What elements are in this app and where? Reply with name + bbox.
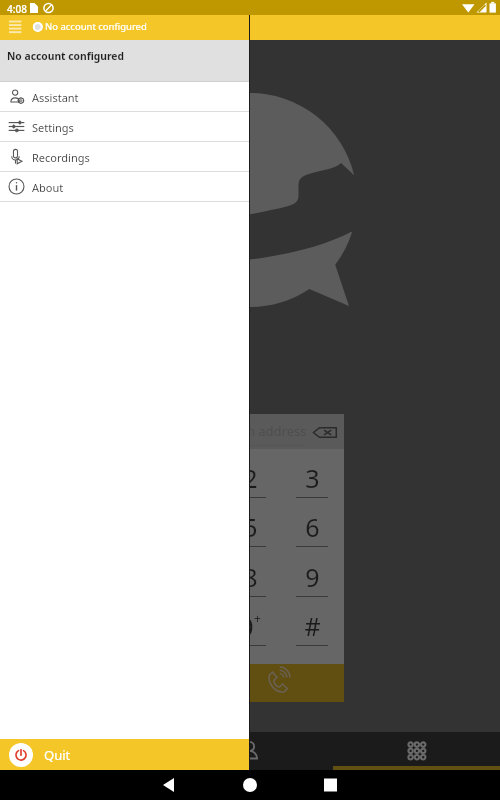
- staticText: Quit: [44, 746, 71, 764]
- button[interactable]: #: [282, 611, 342, 660]
- button[interactable]: 2: [220, 463, 280, 512]
- button[interactable]: 8: [220, 562, 280, 611]
- staticText: 6: [305, 510, 320, 544]
- button[interactable]: Settings: [0, 112, 250, 141]
- button[interactable]: Dialer: [333, 732, 500, 770]
- button[interactable]: Recordings: [0, 142, 250, 171]
- staticText: Enter a number or an address: [124, 422, 307, 440]
- button[interactable]: History: [0, 732, 166, 770]
- button[interactable]: Contacts: [166, 732, 333, 770]
- staticText: Recordings: [32, 150, 90, 165]
- staticText: Settings: [32, 120, 74, 135]
- staticText: No account configured: [7, 49, 124, 63]
- button[interactable]: Open navigation menu: [3, 16, 28, 38]
- staticText: 8: [243, 560, 258, 594]
- staticText: No account configured: [45, 20, 147, 33]
- staticText: +: [254, 610, 261, 626]
- button[interactable]: No account configured: [0, 40, 250, 82]
- button[interactable]: 3: [282, 463, 342, 512]
- staticText: 2: [243, 461, 258, 495]
- button[interactable]: 0: [220, 611, 280, 660]
- button[interactable]: 6: [282, 512, 342, 561]
- button[interactable]: About: [0, 172, 250, 201]
- staticText: 9: [305, 560, 320, 594]
- staticText: About: [32, 180, 64, 195]
- button[interactable]: Quit: [0, 739, 250, 770]
- staticText: 5: [243, 510, 258, 544]
- staticText: 3: [305, 461, 320, 495]
- button[interactable]: Assistant: [0, 82, 250, 111]
- button[interactable]: Call: [154, 664, 344, 702]
- button[interactable]: 5: [220, 512, 280, 561]
- staticText: 4:08: [7, 2, 27, 16]
- staticText: Assistant: [32, 90, 79, 105]
- staticText: 0: [239, 609, 254, 643]
- button[interactable]: 9: [282, 562, 342, 611]
- button[interactable]: Erase: [313, 426, 337, 439]
- staticText: #: [304, 609, 321, 643]
